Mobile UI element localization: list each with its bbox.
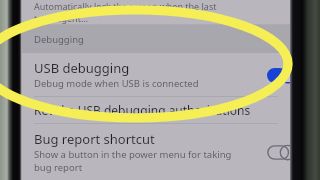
- staticText: bug report: [34, 161, 83, 174]
- staticText: USB debugging: [34, 59, 130, 77]
- button[interactable]: USB debugging: [22, 53, 290, 96]
- staticText: Automatically lock the screen when the l…: [34, 0, 217, 12]
- staticText: Debug mode when USB is connected: [34, 77, 199, 90]
- button[interactable]: Revoke USB debugging authorisations: [22, 97, 290, 123]
- button[interactable]: Bug report shortcut: [22, 124, 290, 180]
- staticText: Bug report shortcut: [34, 130, 155, 148]
- button[interactable]: Automatically lock the screen when the l…: [22, 0, 290, 24]
- staticText: Show a button in the power menu for taki…: [34, 148, 234, 161]
- staticText: Debugging: [34, 33, 84, 46]
- button[interactable]: Turn off USB debugging: [266, 65, 290, 85]
- staticText: Revoke USB debugging authorisations: [34, 102, 251, 118]
- staticText: trust agent...: [34, 12, 89, 24]
- button[interactable]: Turn on Bug report shortcut: [266, 142, 290, 162]
